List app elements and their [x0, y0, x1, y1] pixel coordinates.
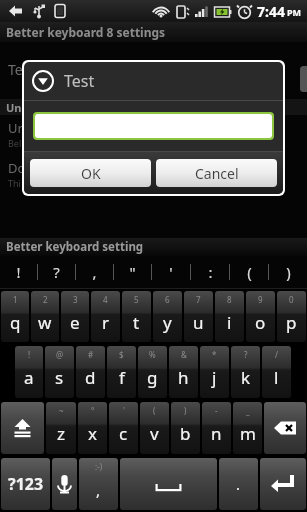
button[interactable]: , [76, 256, 113, 288]
button[interactable]: Cancel [156, 159, 277, 187]
staticText: z [57, 422, 65, 445]
staticText: Thi [8, 177, 21, 189]
button[interactable]: 2 [31, 291, 59, 342]
button[interactable]: ~ [46, 402, 76, 454]
staticText: @ [56, 349, 64, 360]
staticText: Cancel [195, 164, 239, 183]
button[interactable]: OK [30, 159, 151, 187]
staticText: Bel [8, 137, 22, 149]
staticText: : [208, 262, 213, 282]
staticText: " [129, 262, 136, 282]
staticText: o [255, 311, 266, 334]
button[interactable]: 1 [1, 291, 29, 342]
staticText: 0 [289, 294, 294, 305]
button[interactable]: # [76, 346, 105, 398]
staticText: :-) [95, 461, 103, 472]
staticText: j [212, 366, 217, 389]
button[interactable]: Voice input [52, 458, 77, 510]
staticText: e [70, 311, 80, 334]
button[interactable]: - [202, 402, 231, 454]
staticText: a [24, 366, 34, 389]
button[interactable]: ' [109, 402, 138, 454]
staticText: ) [184, 405, 187, 416]
button[interactable]: 9 [246, 291, 275, 342]
button[interactable]: . [219, 458, 258, 510]
staticText: ?123 [8, 473, 44, 495]
button[interactable]: 8 [215, 291, 244, 342]
staticText: ' [169, 262, 173, 282]
button[interactable]: ' [152, 256, 190, 288]
staticText: 6 [165, 294, 170, 305]
staticText: g [147, 366, 158, 389]
button[interactable]: ( [140, 402, 169, 454]
button[interactable]: 0 [277, 291, 306, 342]
staticText: u [193, 311, 204, 334]
button[interactable]: 5 [122, 291, 151, 342]
button[interactable]: Space [120, 458, 217, 510]
button[interactable]: " [114, 256, 151, 288]
staticText: . [236, 474, 241, 494]
button[interactable]: 6 [153, 291, 182, 342]
staticText: Ur [8, 119, 23, 137]
staticText: & [181, 349, 187, 360]
staticText: 7 [196, 294, 201, 305]
staticText: * [212, 349, 217, 360]
staticText: ~ [59, 405, 64, 416]
button[interactable]: ! [15, 346, 43, 398]
button[interactable]: $ [107, 346, 136, 398]
button[interactable]: 4 [91, 291, 120, 342]
staticText: b [180, 422, 191, 445]
staticText: 2 [43, 294, 48, 305]
staticText: k [241, 366, 251, 389]
staticText: Unl [6, 100, 25, 115]
staticText: , [92, 262, 97, 282]
button[interactable]: ? [231, 346, 260, 398]
button[interactable]: Delete [264, 402, 306, 454]
button[interactable]: _ [233, 402, 262, 454]
button[interactable]: / [262, 346, 291, 398]
staticText: - [215, 405, 218, 416]
staticText: ! [16, 262, 21, 282]
button[interactable]: ? [38, 256, 75, 288]
button[interactable]: & [169, 346, 198, 398]
staticText: h [178, 366, 189, 389]
button[interactable]: @ [45, 346, 74, 398]
staticText: l [274, 366, 279, 389]
staticText: , [96, 480, 101, 500]
button[interactable]: ) [171, 402, 200, 454]
button[interactable]: 3 [61, 291, 89, 342]
button[interactable]: Enter [260, 458, 306, 510]
staticText: m [240, 422, 256, 445]
staticText: ' [123, 405, 125, 416]
staticText: Te [8, 60, 23, 79]
staticText: ? [244, 349, 248, 360]
staticText: w [38, 311, 52, 334]
staticText: Test [64, 70, 95, 92]
button[interactable]: ?123 [1, 458, 50, 510]
staticText: ( [153, 405, 156, 416]
staticText: i [227, 311, 232, 334]
button[interactable]: % [138, 346, 167, 398]
staticText: q [10, 311, 21, 334]
staticText: d [85, 366, 96, 389]
button[interactable]: ° [78, 402, 107, 454]
button[interactable]: Shift [1, 402, 44, 454]
button[interactable]: ! [0, 256, 37, 288]
button[interactable]: 7 [184, 291, 213, 342]
button[interactable] [35, 114, 272, 138]
staticText: 3 [73, 294, 78, 305]
staticText: Better keyboard setting [6, 239, 144, 255]
staticText: 4 [103, 294, 108, 305]
staticText: Better keyboard 8 settings [6, 24, 166, 40]
staticText: Do [8, 159, 26, 177]
button[interactable]: :-) [79, 458, 118, 510]
staticText: c [119, 422, 128, 445]
staticText: % [149, 349, 156, 360]
staticText: n [211, 422, 222, 445]
staticText: f [119, 366, 125, 389]
button[interactable]: * [200, 346, 229, 398]
button[interactable]: ( [230, 256, 268, 288]
button[interactable]: : [191, 256, 229, 288]
button[interactable]: ) [269, 256, 307, 288]
staticText: OK [81, 164, 101, 183]
